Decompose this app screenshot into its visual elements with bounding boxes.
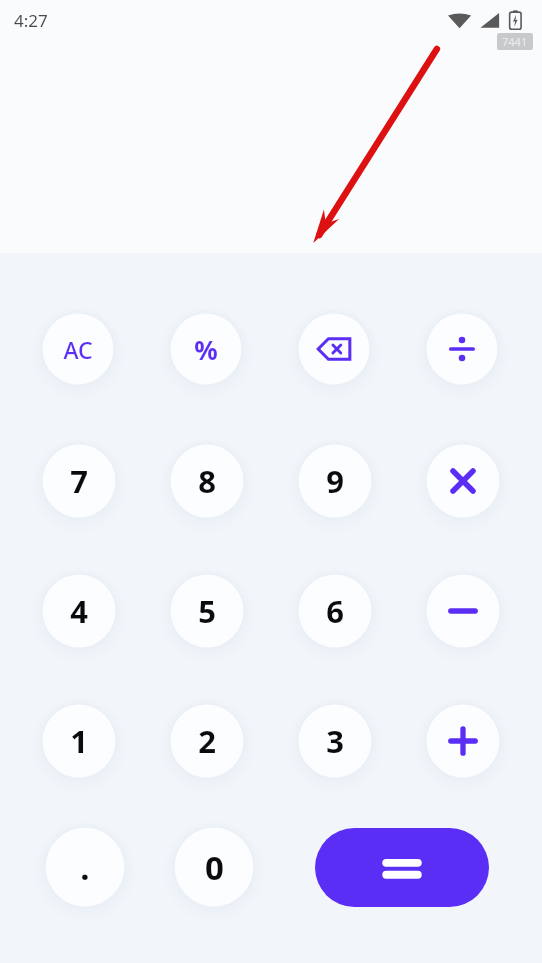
button[interactable]: AC (42, 313, 114, 385)
button[interactable]: 5 (170, 574, 244, 648)
staticText: 9 (326, 460, 344, 502)
button[interactable]: 2 (170, 704, 244, 778)
button[interactable]: 0 (174, 827, 254, 907)
staticText: 5 (198, 590, 216, 632)
button[interactable]: % (170, 313, 242, 385)
button[interactable]: 8 (170, 444, 244, 518)
staticText: % (194, 332, 218, 367)
staticText: 3 (326, 720, 344, 762)
staticText: 7 (70, 460, 88, 502)
button[interactable]: Divide (426, 313, 498, 385)
button[interactable]: Equals (315, 828, 489, 907)
button[interactable]: 6 (298, 574, 372, 648)
button[interactable]: Subtract (426, 574, 500, 648)
button[interactable]: 1 (42, 704, 116, 778)
button[interactable]: 3 (298, 704, 372, 778)
staticText: 6 (326, 590, 344, 632)
button[interactable]: Multiply (426, 444, 500, 518)
staticText: . (80, 845, 90, 890)
staticText: 0 (205, 845, 224, 890)
button[interactable]: 9 (298, 444, 372, 518)
button[interactable]: . (45, 827, 125, 907)
staticText: 4:27 (14, 9, 48, 32)
staticText: 8 (198, 460, 216, 502)
staticText: 2 (198, 720, 216, 762)
button[interactable]: 7 (42, 444, 116, 518)
staticText: 4 (70, 590, 88, 632)
staticText: 1 (70, 720, 88, 762)
button[interactable]: Backspace (298, 313, 370, 385)
button[interactable]: 4 (42, 574, 116, 648)
button[interactable]: Add (426, 704, 500, 778)
staticText: AC (63, 334, 93, 365)
staticText: 7441 (502, 34, 528, 49)
